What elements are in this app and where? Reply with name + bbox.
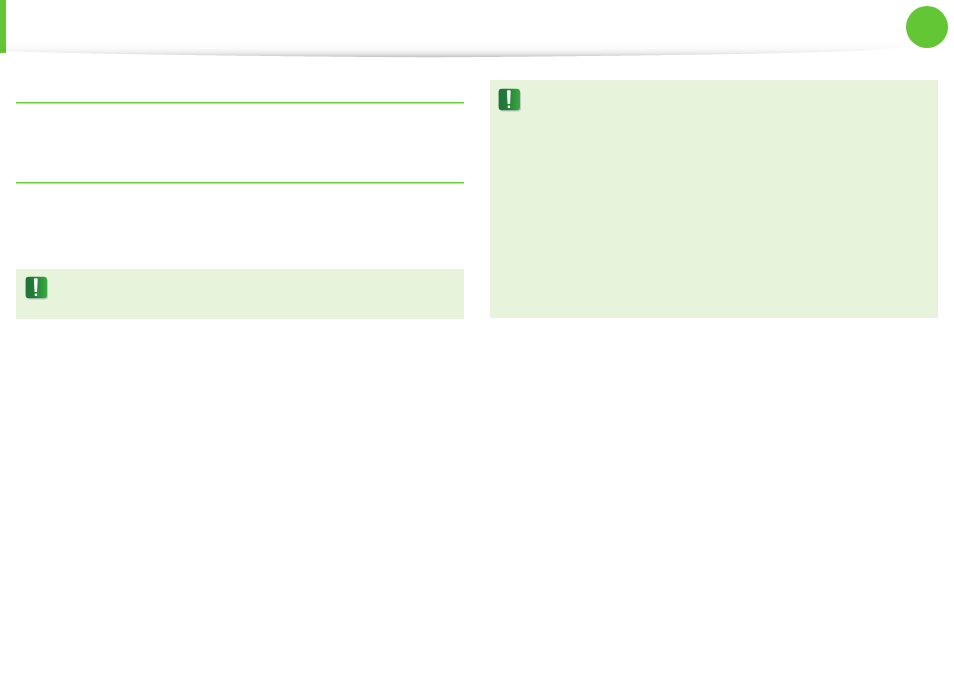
- button[interactable]: Notice: [490, 80, 938, 318]
- button[interactable]: Input field: [16, 158, 464, 184]
- button[interactable]: Input field: [16, 78, 464, 104]
- button[interactable]: Notice: [16, 269, 464, 319]
- button[interactable]: Account: [906, 6, 948, 48]
